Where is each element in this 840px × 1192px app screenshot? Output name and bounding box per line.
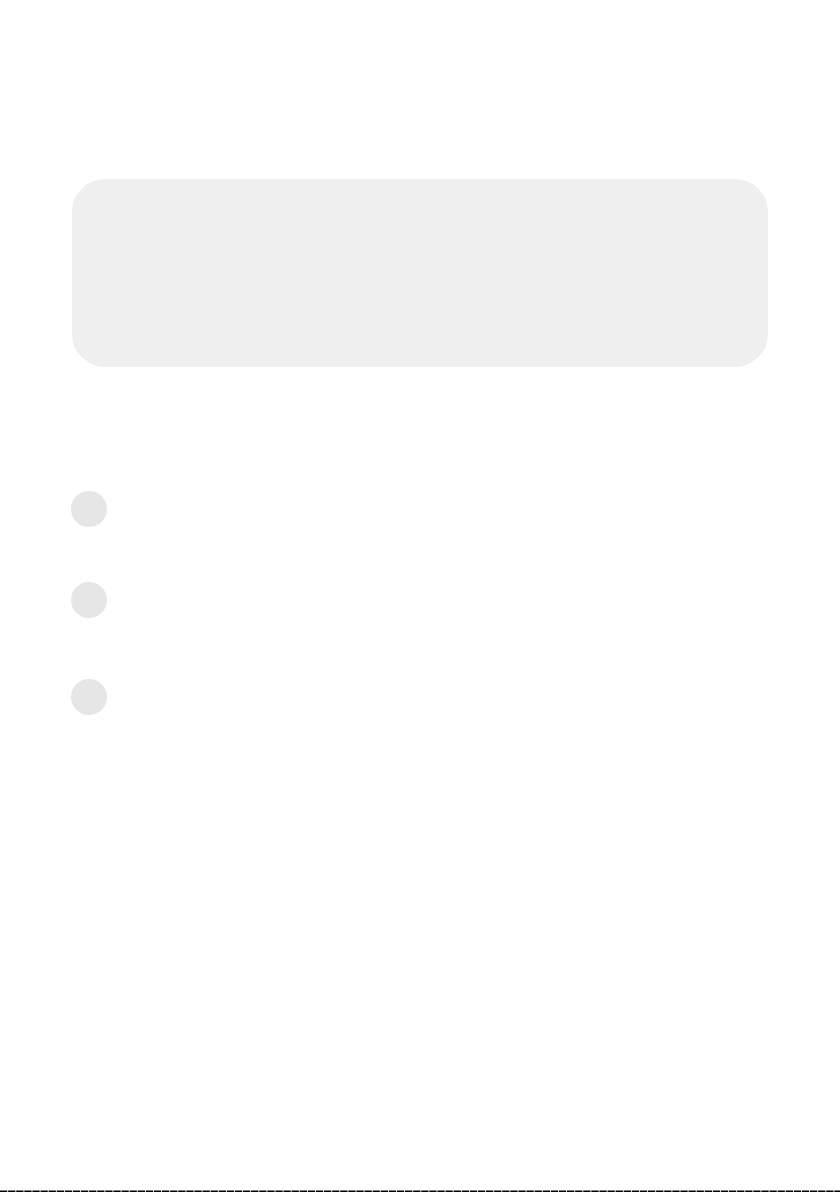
button[interactable]: List item 3 [0, 679, 840, 715]
button[interactable]: List item 2 [0, 582, 840, 618]
button[interactable]: List item 1 [0, 491, 840, 527]
